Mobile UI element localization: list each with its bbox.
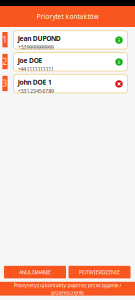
staticText: Priorytetyzuj kontakty poprzez przeciąga… [14,281,121,289]
staticText: POTWIERDZENIE [79,268,120,276]
staticText: Joe DOE [18,56,43,65]
staticText: Jean DUPOND [18,34,61,43]
button[interactable]: 1 [0,31,135,52]
staticText: +33 9999999999 [18,43,54,51]
button[interactable]: POTWIERDZENIE [68,266,130,278]
staticText: 3 [2,78,7,89]
staticText: 2 [2,56,7,67]
staticText: Priorytet kontaktów [36,12,98,21]
staticText: +44 1111111111 [18,65,54,73]
staticText: John DOE 1 [18,78,52,87]
button[interactable]: ANULOWANIE [4,266,66,278]
staticText: 1 [2,34,7,45]
staticText: przenoszenie [51,289,84,296]
button[interactable]: 2 [0,52,135,74]
button[interactable]: 3 [0,74,135,96]
staticText: ANULOWANIE [19,268,51,276]
staticText: +33 1 23 45 67 89 [18,87,54,95]
